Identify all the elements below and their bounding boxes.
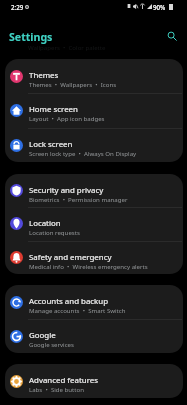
button[interactable]: Safety and emergency xyxy=(5,241,183,274)
staticText: Accounts and backup xyxy=(29,296,109,307)
staticText: Themes xyxy=(29,70,59,81)
staticText: Google services xyxy=(29,340,74,348)
button[interactable]: Google xyxy=(5,319,183,353)
staticText: Biometrics • Permission manager xyxy=(29,195,128,203)
staticText: Location requests xyxy=(29,228,80,236)
staticText: Labs • Side button xyxy=(29,385,84,393)
staticText: Location xyxy=(29,218,61,229)
staticText: 90% xyxy=(153,3,166,11)
button[interactable]: Themes xyxy=(5,59,183,93)
staticText: Screen lock type • Always On Display xyxy=(29,149,137,157)
staticText: Medical info • Wireless emergency alerts xyxy=(29,262,148,270)
staticText: Home screen xyxy=(29,104,78,115)
staticText: Layout • App icon badges xyxy=(29,114,105,122)
staticText: Safety and emergency xyxy=(29,252,112,263)
staticText: 2:29 xyxy=(11,3,24,11)
button[interactable]: Location xyxy=(5,207,183,240)
button[interactable]: Lock screen xyxy=(5,128,183,162)
staticText: Wallpapers • Color palette xyxy=(28,43,106,51)
button[interactable]: Home screen xyxy=(5,93,183,127)
staticText: Settings xyxy=(9,30,53,44)
button[interactable]: Accounts and backup xyxy=(5,285,183,319)
button[interactable]: Search xyxy=(163,27,180,44)
button[interactable]: Security and privacy xyxy=(5,174,183,207)
staticText: Manage accounts • Smart Switch xyxy=(29,306,126,314)
staticText: Lock screen xyxy=(29,139,73,150)
button[interactable]: Advanced features xyxy=(5,364,183,398)
staticText: Google xyxy=(29,330,56,341)
staticText: Advanced features xyxy=(29,375,98,386)
staticText: Security and privacy xyxy=(29,185,104,196)
staticText: Themes • Wallpapers • Icons xyxy=(29,80,117,88)
